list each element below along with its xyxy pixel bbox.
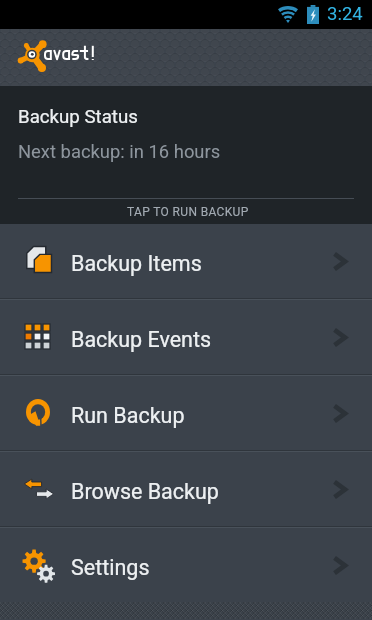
staticText: Browse Backup [71, 479, 219, 504]
staticText: Backup Events [71, 327, 212, 352]
staticText: Backup Status [18, 106, 138, 128]
staticText: TAP TO RUN BACKUP [127, 205, 249, 219]
button[interactable]: Browse Backup [0, 452, 372, 526]
staticText: Backup Items [71, 251, 202, 276]
button[interactable]: TAP TO RUN BACKUP [0, 199, 372, 224]
button[interactable]: Backup Events [0, 300, 372, 374]
button[interactable]: Settings [0, 528, 372, 602]
staticText: Settings [71, 555, 150, 580]
staticText: Run Backup [71, 403, 185, 428]
button[interactable]: Run Backup [0, 376, 372, 450]
staticText: Next backup: in 16 hours [18, 141, 221, 163]
button[interactable]: Backup Items [0, 224, 372, 298]
staticText: 3:24 [327, 3, 363, 25]
